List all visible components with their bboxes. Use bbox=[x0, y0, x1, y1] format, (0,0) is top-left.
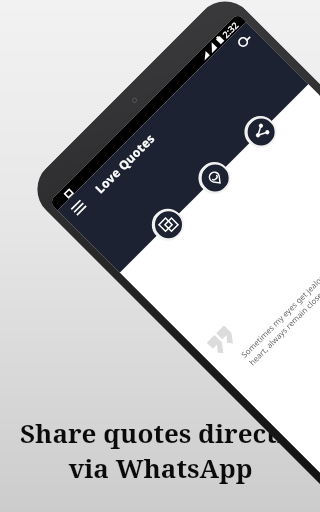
staticText: via WhatsApp bbox=[68, 450, 253, 485]
staticText: Love Quotes bbox=[91, 130, 158, 196]
button[interactable]: Copy bbox=[149, 205, 188, 244]
staticText: 2:32 bbox=[219, 19, 241, 40]
staticText: Sometimes my eyes get jealous of my bbox=[238, 251, 320, 360]
button[interactable]: Share bbox=[242, 113, 280, 151]
button[interactable]: Menu bbox=[63, 192, 94, 223]
staticText: heart, always remain close to my love bbox=[246, 260, 320, 367]
button[interactable]: Search bbox=[230, 25, 261, 56]
button[interactable]: Send to WhatsApp bbox=[196, 159, 234, 197]
staticText: Share quotes directly bbox=[20, 415, 301, 450]
